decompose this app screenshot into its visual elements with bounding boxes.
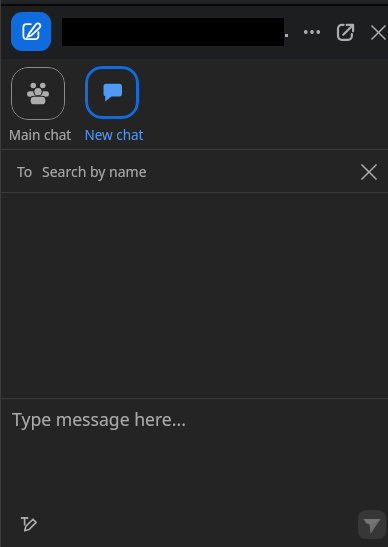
button[interactable]: More options — [298, 18, 326, 46]
button[interactable]: Pop out — [331, 18, 359, 46]
staticText: Main chat — [6, 126, 74, 144]
button[interactable]: To — [0, 150, 388, 192]
button[interactable]: Send — [358, 510, 386, 539]
staticText: Type message here... — [12, 407, 186, 431]
staticText: New chat — [80, 126, 148, 144]
button[interactable]: New chat — [78, 62, 146, 146]
button[interactable]: Main chat — [4, 62, 72, 146]
button[interactable]: Clear — [355, 158, 383, 186]
staticText: Search by name — [42, 162, 147, 181]
staticText: To — [17, 162, 33, 181]
button[interactable]: Format — [14, 509, 42, 537]
button[interactable]: New message — [11, 12, 51, 51]
button[interactable]: Close — [364, 18, 388, 46]
